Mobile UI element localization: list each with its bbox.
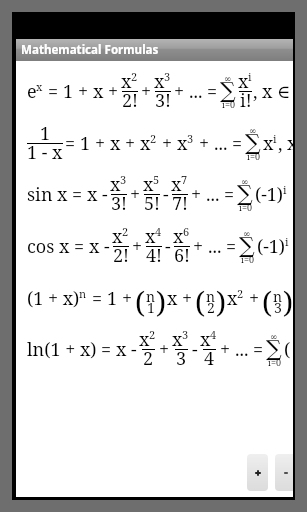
staticText: x (227, 286, 238, 311)
staticText: x (143, 172, 154, 197)
staticText: 3 (274, 298, 282, 317)
staticText: ∑ (239, 233, 255, 259)
staticText: x (139, 327, 150, 352)
button[interactable]: Zoom in (247, 454, 268, 491)
staticText: 4 (204, 346, 215, 371)
staticText: x (59, 234, 70, 259)
staticText: 2 (150, 131, 157, 146)
staticText: x (154, 69, 165, 94)
staticText: ( (262, 282, 273, 321)
staticText: - (131, 337, 137, 362)
staticText: ∞ (249, 126, 257, 136)
staticText: + (191, 182, 202, 207)
staticText: = (74, 234, 85, 259)
staticText: ... (189, 79, 203, 104)
staticText: , (278, 131, 283, 156)
staticText: 1 (80, 131, 91, 156)
staticText: 2 (149, 327, 156, 342)
staticText: 3 (164, 69, 171, 84)
staticText: (-1) (255, 182, 284, 207)
staticText: x (287, 131, 293, 156)
staticText: , (253, 79, 258, 104)
staticText: 1 (107, 286, 118, 311)
staticText: i (273, 131, 277, 146)
staticText: + (132, 234, 143, 259)
button[interactable]: Mathematical Formulas (16, 39, 293, 61)
staticText: 3! (155, 88, 172, 113)
staticText: cos (27, 234, 55, 259)
staticText: sin (27, 182, 53, 207)
staticText: i (283, 182, 287, 197)
staticText: = (48, 79, 59, 104)
staticText: x (238, 69, 249, 94)
staticText: ∞ (224, 74, 232, 84)
staticText: - (165, 234, 171, 259)
staticText: + (122, 286, 133, 311)
staticText: ∑ (220, 78, 236, 104)
staticText: i=0 (222, 98, 235, 110)
staticText: + (95, 131, 106, 156)
staticText: x (112, 224, 123, 249)
staticText: i (285, 234, 289, 249)
staticText: 4! (146, 243, 163, 268)
staticText: 3 (176, 346, 187, 371)
staticText: x (110, 131, 121, 156)
staticText: ∈ (277, 81, 291, 102)
staticText: 2 (131, 69, 138, 84)
staticText: = (232, 131, 243, 156)
staticText: 4 (210, 327, 217, 342)
staticText: ... (235, 337, 249, 362)
staticText: 3 (120, 172, 127, 187)
staticText: x (171, 172, 182, 197)
staticText: ∞ (241, 177, 249, 187)
staticText: 6 (183, 224, 190, 239)
staticText: = (207, 79, 218, 104)
staticText: ( (284, 337, 291, 362)
staticText: x (121, 69, 132, 94)
staticText: = (226, 234, 237, 259)
staticText: i=0 (239, 201, 252, 213)
staticText: 1 (147, 298, 155, 317)
staticText: ) (156, 282, 167, 321)
button[interactable]: Zoom out (275, 454, 293, 491)
staticText: ( (195, 282, 206, 321)
staticText: x (173, 224, 184, 249)
staticText: = (224, 182, 235, 207)
staticText: 5 (153, 172, 160, 187)
staticText: x (57, 182, 68, 207)
staticText: 2 (207, 298, 215, 317)
staticText: x (167, 286, 178, 311)
staticText: ... (214, 131, 228, 156)
staticText: + (108, 79, 119, 104)
staticText: x (89, 234, 100, 259)
staticText: x (140, 131, 151, 156)
staticText: i! (240, 88, 252, 113)
staticText: i=0 (268, 356, 281, 368)
staticText: + (249, 286, 260, 311)
staticText: Mathematical Formulas (21, 42, 159, 58)
staticText: n (79, 286, 87, 301)
staticText: 1 - x (27, 140, 63, 165)
staticText: i (248, 69, 252, 84)
staticText: - (104, 234, 110, 259)
staticText: x (116, 337, 127, 362)
staticText: 5! (144, 191, 161, 216)
staticText: + (162, 131, 173, 156)
staticText: (1 + x) (27, 286, 80, 311)
staticText: x (93, 79, 104, 104)
staticText: + (78, 79, 89, 104)
staticText: n (206, 287, 216, 306)
staticText: 7! (172, 191, 189, 216)
staticText: - (192, 337, 198, 362)
staticText: x (110, 172, 121, 197)
staticText: 3 (182, 327, 189, 342)
staticText: 6! (174, 243, 191, 268)
staticText: + (174, 79, 185, 104)
staticText: x (263, 131, 274, 156)
staticText: = (101, 337, 112, 362)
staticText: (-1) (257, 234, 286, 259)
staticText: x (200, 327, 211, 352)
staticText: ∞ (270, 332, 278, 342)
staticText: i=0 (241, 253, 254, 265)
staticText: n (273, 287, 283, 306)
